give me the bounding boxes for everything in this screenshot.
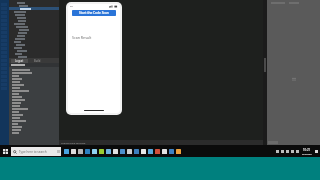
button[interactable]: Logcat bbox=[11, 59, 28, 63]
button[interactable]: Tray icon 2 bbox=[280, 145, 285, 157]
staticText: 10:21 bbox=[303, 148, 311, 152]
button[interactable] bbox=[9, 63, 59, 67]
button[interactable]: Taskbar app 4 bbox=[84, 145, 91, 157]
button[interactable]: Taskbar app 14 bbox=[154, 145, 161, 157]
button[interactable]: Tray icon 1 bbox=[275, 145, 280, 157]
staticText: Logcat bbox=[15, 59, 24, 63]
button[interactable]: Taskbar app 12 bbox=[140, 145, 147, 157]
button[interactable]: Taskbar app 10 bbox=[126, 145, 133, 157]
button[interactable]: Taskbar app 9 bbox=[119, 145, 126, 157]
staticText: Start the Code Scan bbox=[79, 11, 109, 15]
button[interactable]: Taskbar app 1 bbox=[63, 145, 70, 157]
staticText: Gradle build finished bbox=[61, 141, 86, 144]
button[interactable]: Tray icon 5 bbox=[295, 145, 300, 157]
staticText: Build bbox=[34, 59, 41, 63]
button[interactable]: Taskbar app 16 bbox=[168, 145, 175, 157]
button[interactable]: Build bbox=[30, 59, 45, 63]
button[interactable]: Taskbar app 11 bbox=[133, 145, 140, 157]
button[interactable]: Tool window bar bbox=[0, 0, 9, 145]
staticText: 5/7/2021 bbox=[302, 152, 312, 155]
button[interactable]: Taskbar app 3 bbox=[77, 145, 84, 157]
button[interactable]: Tray icon 4 bbox=[290, 145, 295, 157]
button[interactable]: Taskbar app 2 bbox=[70, 145, 77, 157]
staticText: Type here to search bbox=[19, 150, 47, 154]
button[interactable]: Taskbar app 8 bbox=[112, 145, 119, 157]
button[interactable]: Taskbar app 13 bbox=[147, 145, 154, 157]
button[interactable] bbox=[9, 0, 59, 58]
button[interactable]: Start bbox=[0, 145, 11, 157]
button[interactable]: Taskbar app 17 bbox=[175, 145, 182, 157]
button[interactable] bbox=[9, 67, 59, 145]
button[interactable]: Tray icon 3 bbox=[285, 145, 290, 157]
button[interactable]: Taskbar app 5 bbox=[91, 145, 98, 157]
button[interactable]: Taskbar app 15 bbox=[161, 145, 168, 157]
button[interactable]: Type here to search bbox=[11, 147, 61, 156]
staticText: Scan Result bbox=[72, 35, 92, 40]
button[interactable]: Start the Code Scan bbox=[72, 10, 116, 16]
button[interactable]: Taskbar app 6 bbox=[98, 145, 105, 157]
button[interactable]: Notifications bbox=[314, 145, 319, 157]
button[interactable]: 10:21 bbox=[300, 145, 314, 157]
button[interactable]: Taskbar app 7 bbox=[105, 145, 112, 157]
